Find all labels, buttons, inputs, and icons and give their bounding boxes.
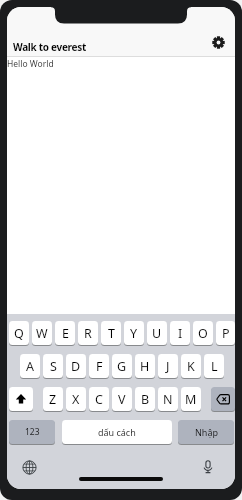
staticText: O (198, 325, 208, 342)
staticText: N (163, 391, 173, 408)
button[interactable] (201, 460, 215, 474)
staticText: B (141, 391, 150, 408)
button[interactable]: W (32, 321, 52, 346)
staticText: F (96, 358, 103, 375)
staticText: L (211, 358, 218, 375)
button[interactable]: D (66, 354, 86, 379)
button[interactable]: U (147, 321, 167, 346)
button[interactable]: J (158, 354, 178, 379)
button[interactable]: O (193, 321, 213, 346)
button[interactable]: N (158, 387, 178, 412)
button[interactable]: R (78, 321, 98, 346)
button[interactable]: X (66, 387, 86, 412)
staticText: Walk to everest (13, 40, 86, 54)
staticText: C (95, 391, 103, 408)
staticText: K (187, 358, 195, 375)
button[interactable]: L (204, 354, 224, 379)
button[interactable]: G (112, 354, 132, 379)
button[interactable]: Z (43, 387, 63, 412)
staticText: E (62, 325, 69, 342)
staticText: T (108, 325, 115, 342)
staticText: M (185, 391, 197, 408)
button[interactable]: A (20, 354, 40, 379)
staticText: U (152, 325, 162, 342)
button[interactable]: E (55, 321, 75, 346)
button[interactable]: M (181, 387, 201, 412)
staticText: dấu cách (98, 426, 136, 438)
staticText: V (118, 391, 126, 408)
staticText: Q (14, 325, 24, 342)
button[interactable]: H (135, 354, 155, 379)
button[interactable] (9, 387, 33, 412)
staticText: S (50, 358, 57, 375)
button[interactable]: V (112, 387, 132, 412)
button[interactable]: Nhập (178, 420, 234, 445)
button[interactable]: B (135, 387, 155, 412)
button[interactable]: Y (124, 321, 144, 346)
button[interactable]: I (170, 321, 190, 346)
staticText: H (140, 358, 150, 375)
staticText: Hello World (7, 58, 54, 70)
button[interactable]: P (216, 321, 235, 346)
button[interactable]: dấu cách (62, 420, 172, 445)
button[interactable] (211, 387, 235, 412)
button[interactable] (212, 36, 225, 49)
button[interactable]: C (89, 387, 109, 412)
staticText: G (117, 358, 127, 375)
staticText: I (178, 325, 183, 342)
staticText: D (71, 358, 81, 375)
staticText: Y (130, 325, 138, 342)
button[interactable]: Q (9, 321, 29, 346)
staticText: W (36, 325, 48, 342)
staticText: Z (49, 391, 57, 408)
button[interactable]: 123 (9, 420, 55, 445)
button[interactable]: F (89, 354, 109, 379)
staticText: A (26, 358, 34, 375)
button[interactable]: K (181, 354, 201, 379)
button[interactable] (22, 460, 37, 475)
button[interactable]: T (101, 321, 121, 346)
staticText: Nhập (195, 426, 218, 438)
staticText: J (166, 358, 170, 375)
button[interactable]: S (43, 354, 63, 379)
staticText: R (84, 325, 92, 342)
staticText: X (72, 391, 80, 408)
staticText: P (222, 325, 230, 342)
staticText: 123 (25, 426, 40, 438)
